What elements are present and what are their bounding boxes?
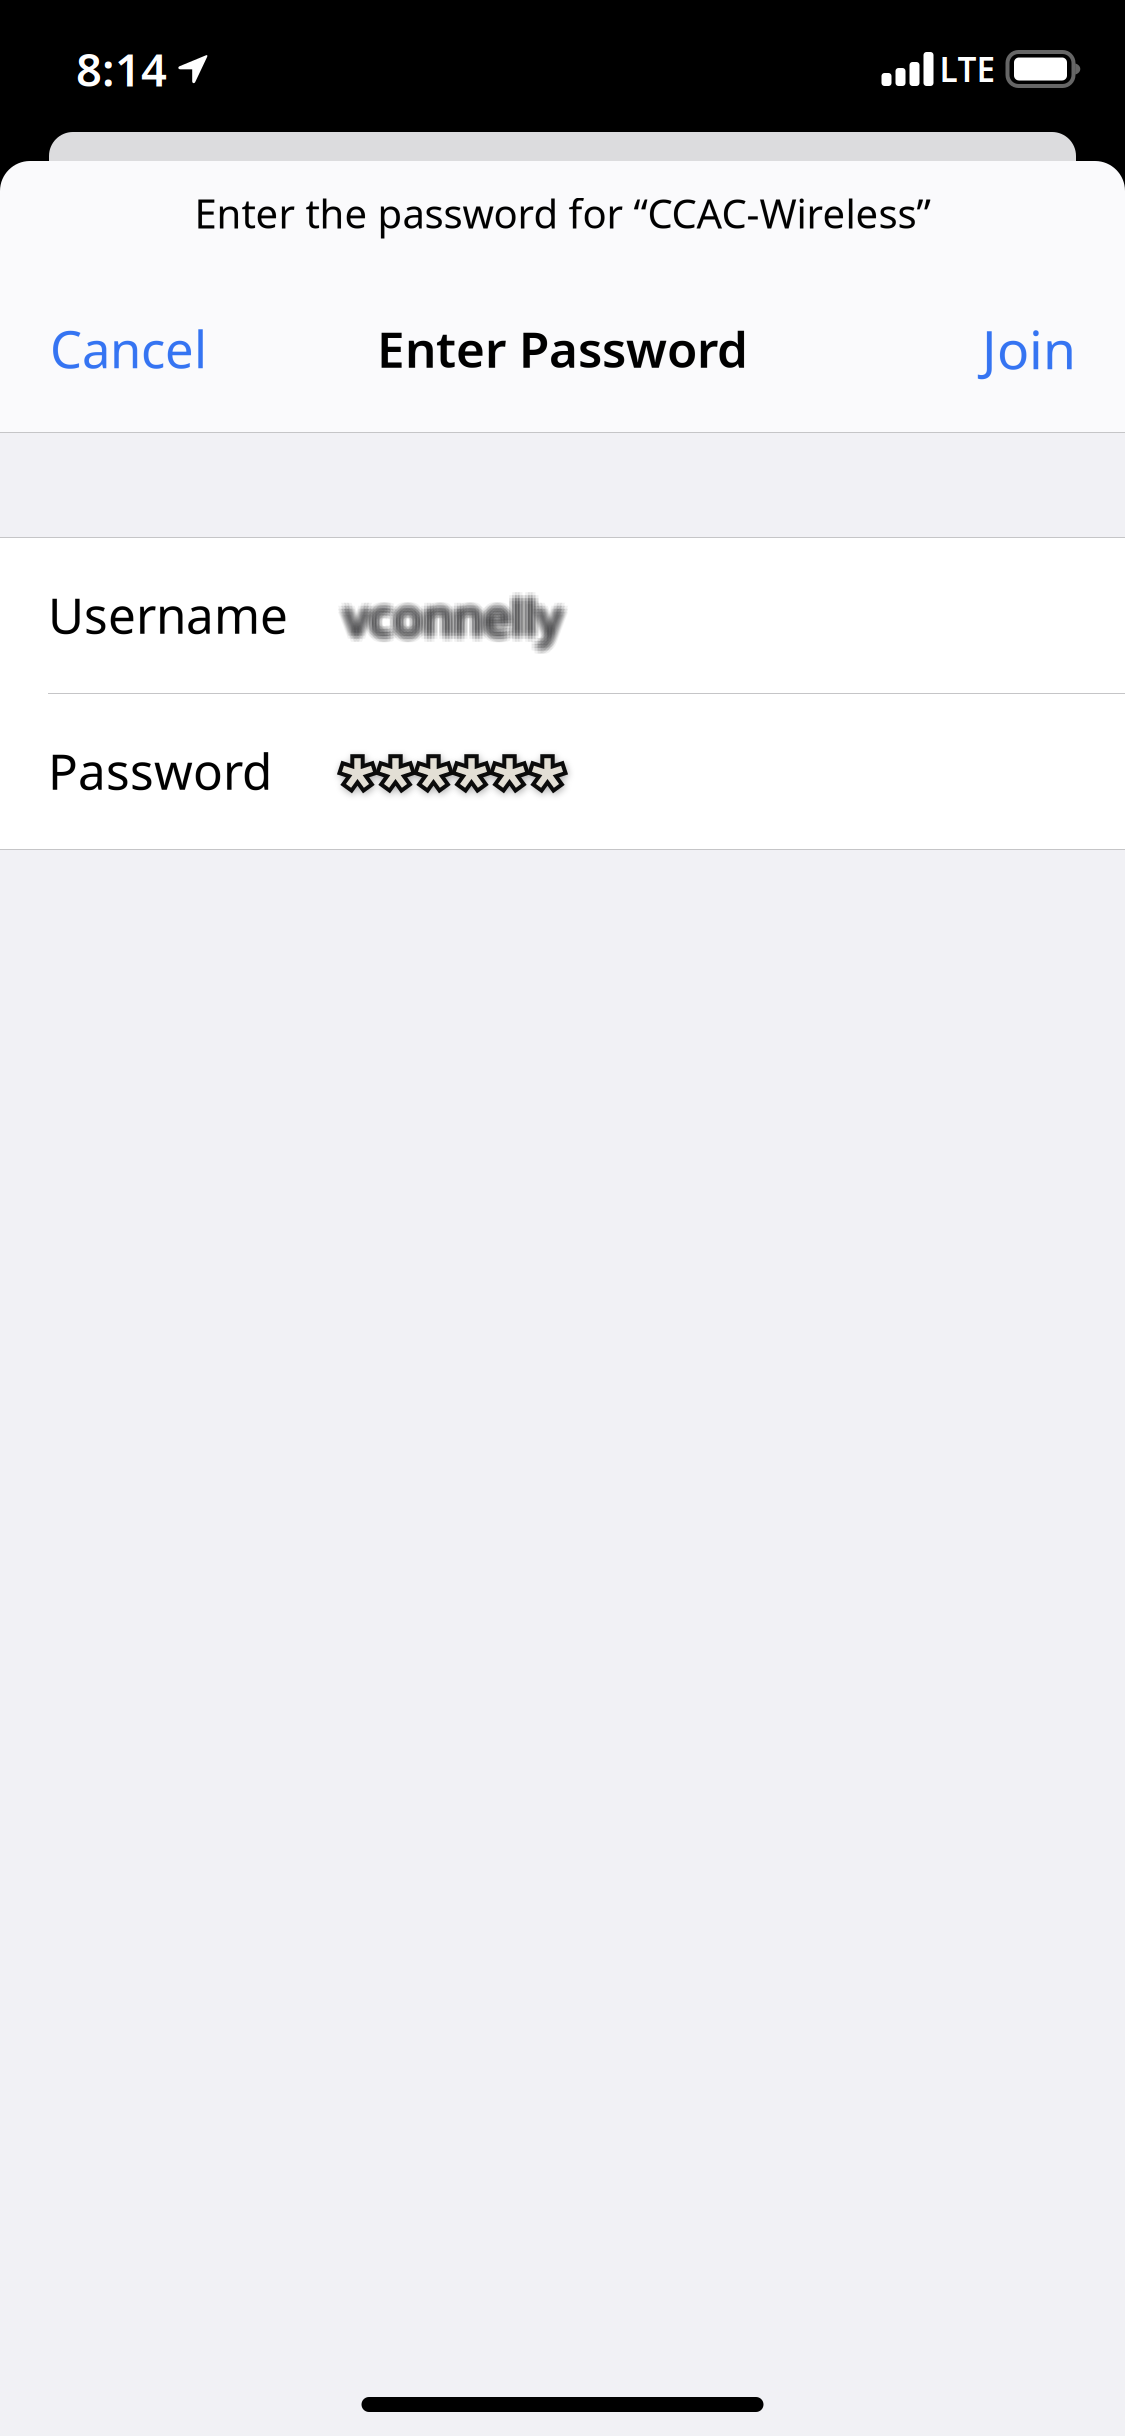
staticText: Username — [48, 582, 288, 647]
staticText: vconnelly — [341, 584, 559, 649]
button[interactable]: Cancel — [0, 278, 247, 418]
staticText: vconnelly — [338, 584, 556, 649]
staticText: vconnelly — [344, 584, 562, 649]
staticText: vconnelly — [341, 590, 559, 655]
staticText: Password — [48, 738, 272, 803]
staticText: vconnelly — [347, 587, 565, 652]
staticText: vconnelly — [350, 581, 568, 646]
staticText: vconnelly — [344, 587, 562, 652]
staticText: vconnelly — [338, 587, 556, 652]
staticText: vconnelly — [347, 578, 565, 643]
staticText: vconnelly — [350, 587, 568, 652]
staticText: Join — [982, 313, 1076, 384]
staticText: Cancel — [50, 315, 207, 382]
staticText: vconnelly — [347, 590, 565, 655]
button[interactable]: Username — [0, 538, 1125, 693]
staticText: vconnelly — [344, 581, 562, 646]
staticText: vconnelly — [338, 581, 556, 646]
staticText: vconnelly — [341, 578, 559, 643]
staticText: vconnelly — [341, 587, 559, 652]
staticText: Enter the password for “CCAC-Wireless” — [194, 186, 930, 239]
staticText: vconnelly — [347, 581, 565, 646]
staticText: vconnelly — [344, 578, 562, 643]
staticText: 8:14 — [76, 39, 167, 99]
staticText: vconnelly — [344, 590, 562, 655]
button[interactable]: Join — [942, 278, 1125, 418]
staticText: vconnelly — [341, 581, 559, 646]
staticText: Enter Password — [377, 316, 748, 381]
button[interactable]: Password — [0, 694, 1125, 849]
staticText: LTE — [939, 47, 995, 91]
staticText: vconnelly — [347, 584, 565, 649]
staticText: vconnelly — [350, 584, 568, 649]
